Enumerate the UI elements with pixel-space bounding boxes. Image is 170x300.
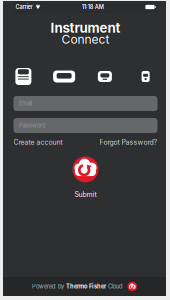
- button[interactable]: Bench instrument: [3, 68, 44, 85]
- button[interactable]: Forgot Password?: [99, 138, 157, 146]
- button[interactable]: Compact instrument: [84, 68, 125, 85]
- staticText: Connect: [61, 32, 109, 47]
- staticText: Powered by: [32, 283, 66, 290]
- staticText: Instrument: [50, 20, 120, 36]
- staticText: Create account: [13, 138, 62, 146]
- staticText: Email: [19, 100, 32, 107]
- staticText: Forgot Password?: [99, 138, 157, 146]
- staticText: Cloud: [106, 283, 123, 290]
- staticText: Submit: [74, 190, 96, 199]
- button[interactable]: Submit: [72, 156, 98, 199]
- button[interactable]: Benchtop analyzer: [44, 68, 85, 85]
- button[interactable]: Email: [13, 96, 157, 111]
- button[interactable]: Handheld device: [125, 68, 166, 85]
- staticText: 11:18 AM: [82, 4, 104, 10]
- staticText: Carrier: [15, 4, 32, 10]
- button[interactable]: Password: [13, 118, 157, 133]
- staticText: Password: [19, 122, 46, 129]
- staticText: Thermo Fisher: [66, 283, 106, 290]
- button[interactable]: Create account: [13, 138, 62, 146]
